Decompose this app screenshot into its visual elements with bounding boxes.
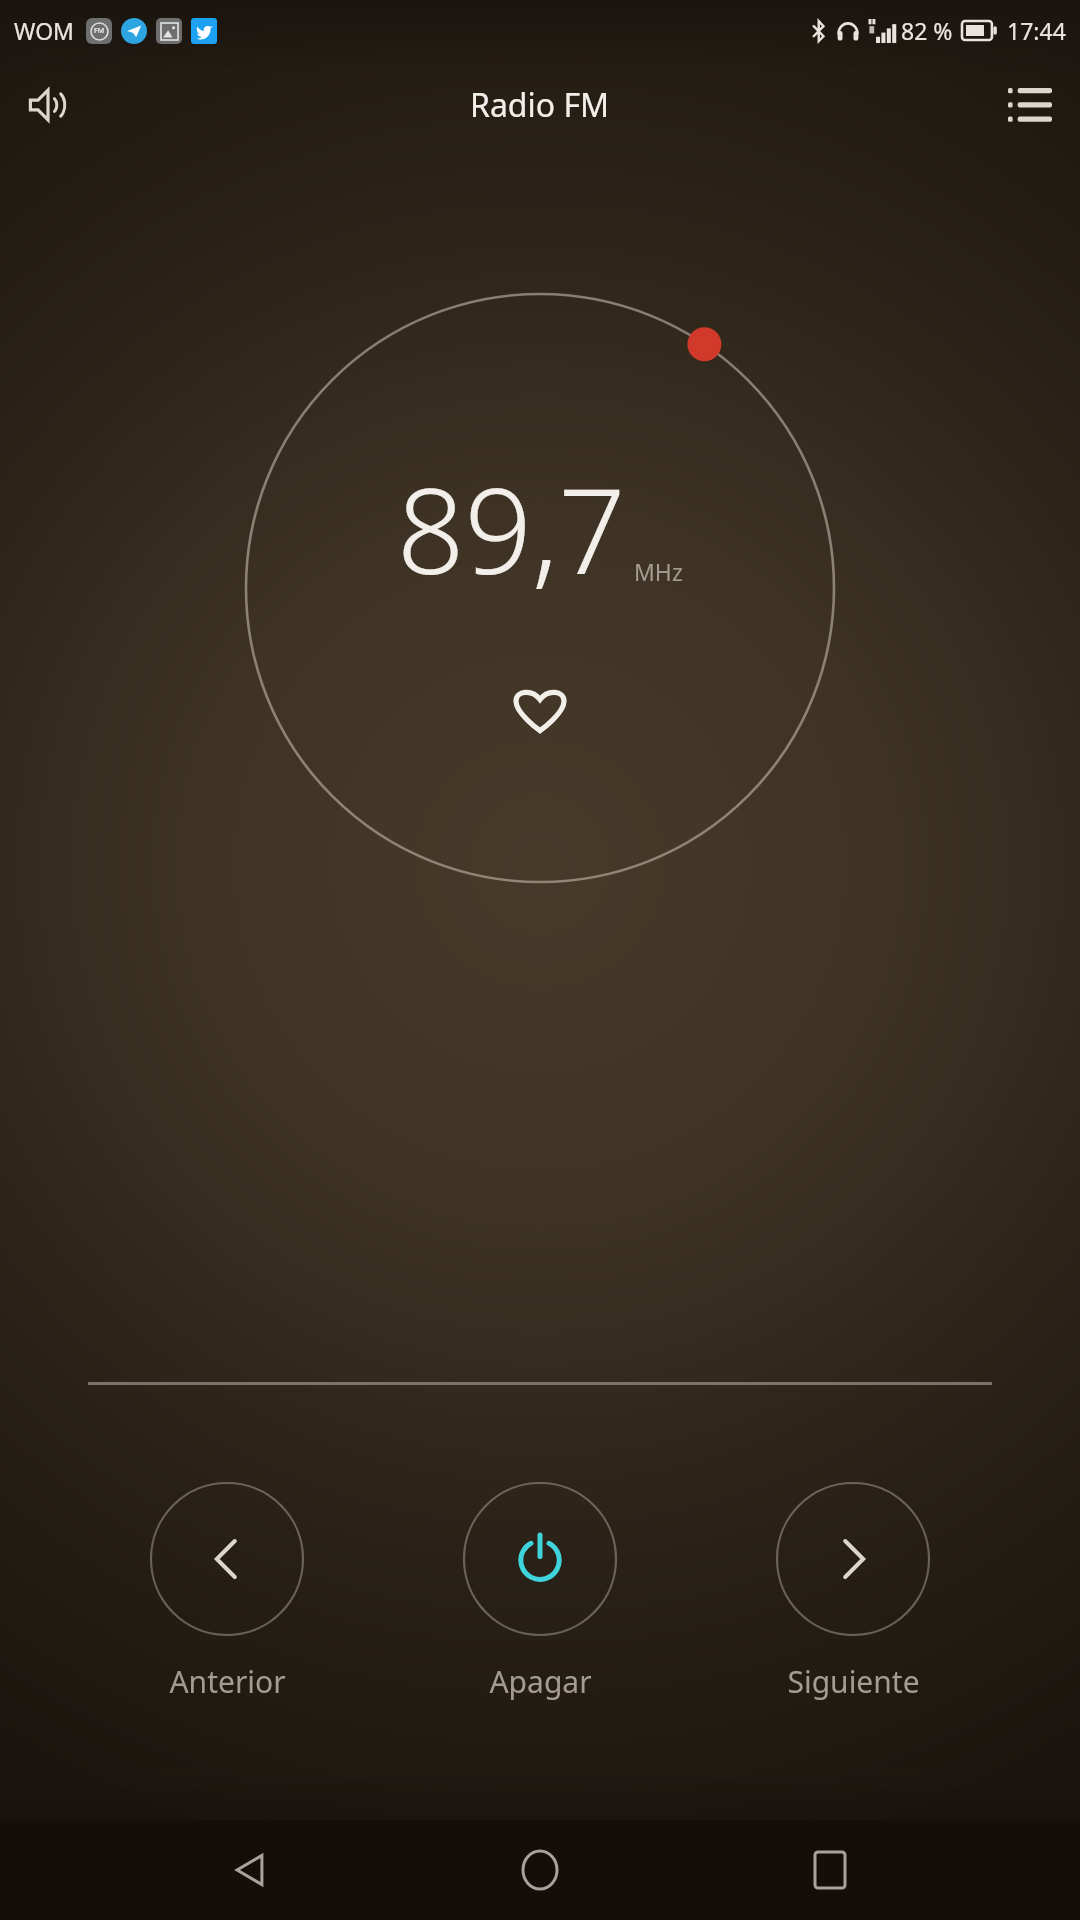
staticText: WOM: [14, 15, 74, 46]
staticText: Siguiente: [787, 1661, 920, 1702]
staticText: Anterior: [169, 1661, 286, 1702]
button[interactable]: Back: [210, 1830, 290, 1910]
staticText: Radio FM: [470, 83, 610, 127]
staticText: 82 %: [901, 15, 953, 46]
staticText: 89,7: [397, 448, 626, 609]
button[interactable]: Home: [500, 1830, 580, 1910]
button[interactable]: Previous station: [141, 1481, 313, 1702]
button[interactable]: Tuning dial: [230, 278, 850, 898]
button[interactable]: Recents: [790, 1830, 870, 1910]
button[interactable]: Favourite: [501, 671, 579, 749]
staticText: 17:44: [1007, 15, 1066, 46]
button[interactable]: Next station: [767, 1481, 939, 1702]
staticText: MHz: [634, 556, 683, 587]
button[interactable]: Station list: [994, 69, 1066, 141]
button[interactable]: Power off: [454, 1481, 626, 1702]
staticText: FM: [94, 26, 104, 36]
staticText: Apagar: [489, 1661, 592, 1702]
button[interactable]: Volume: [12, 69, 84, 141]
